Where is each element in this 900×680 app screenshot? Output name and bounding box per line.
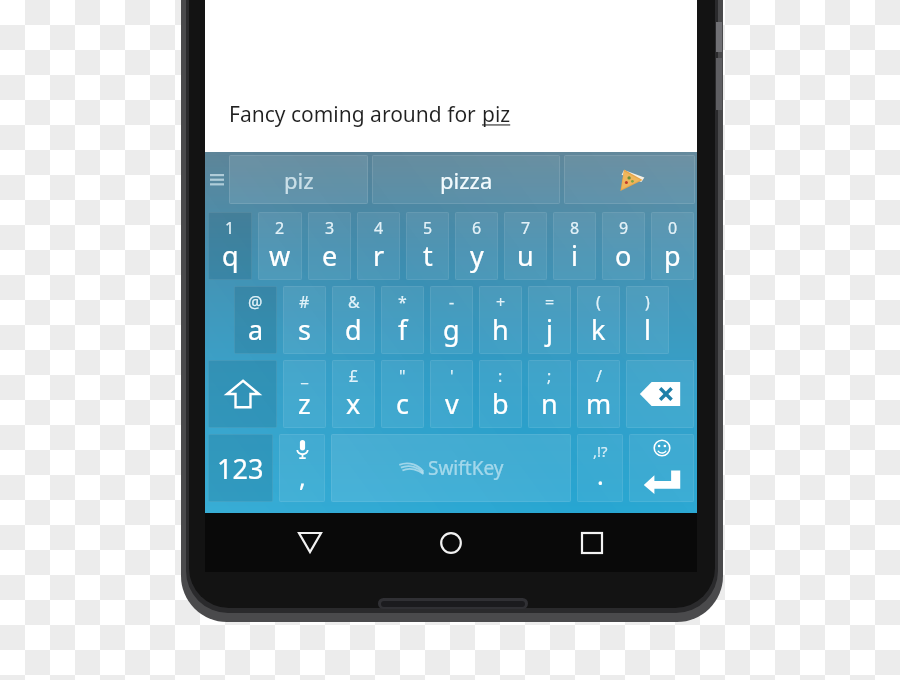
staticText: m (586, 385, 612, 422)
button[interactable]: 6 (455, 212, 498, 280)
staticText: 4 (374, 217, 384, 239)
button[interactable]: 2 (258, 212, 302, 280)
button[interactable]: Backspace (626, 360, 694, 428)
button[interactable]: 8 (553, 212, 596, 280)
button[interactable]: pizza (372, 155, 560, 204)
staticText: Fancy coming around for (229, 100, 482, 129)
staticText: piz (284, 165, 314, 195)
button[interactable]: Shift (208, 360, 277, 428)
button[interactable]: _ (283, 360, 326, 428)
staticText: ) (645, 291, 650, 313)
button[interactable]: & (332, 286, 375, 354)
button[interactable]: Menu (207, 155, 227, 204)
staticText: + (496, 291, 506, 313)
staticText: a (248, 311, 264, 348)
button[interactable]: 1 (208, 212, 252, 280)
staticText: u (517, 237, 534, 274)
button[interactable]: " (381, 360, 424, 428)
staticText: = (545, 291, 555, 313)
staticText: i (571, 237, 578, 274)
staticText: f (398, 311, 408, 348)
staticText: 123 (217, 450, 264, 487)
staticText: " (399, 365, 406, 387)
button[interactable]: = (528, 286, 571, 354)
button[interactable]: 9 (602, 212, 645, 280)
button[interactable]: * (381, 286, 424, 354)
button[interactable]: / (577, 360, 620, 428)
button[interactable]: - (430, 286, 473, 354)
staticText: p (664, 237, 681, 274)
button[interactable]: 0 (651, 212, 694, 280)
button[interactable]: Back (274, 513, 346, 572)
button[interactable]: ,!? (577, 434, 623, 502)
button[interactable]: , (279, 434, 325, 502)
staticText: z (298, 385, 311, 422)
button[interactable]: ) (626, 286, 669, 354)
button[interactable]: 3 (308, 212, 351, 280)
staticText: g (443, 311, 460, 348)
button[interactable]: 5 (406, 212, 449, 280)
staticText: s (298, 311, 311, 348)
staticText: e (322, 237, 338, 274)
staticText: y (470, 237, 484, 274)
staticText: £ (349, 365, 359, 387)
staticText: 3 (325, 217, 335, 239)
staticText: : (498, 365, 503, 387)
staticText: ' (450, 365, 454, 387)
staticText: # (299, 291, 310, 313)
staticText: o (615, 237, 632, 274)
button[interactable]: # (283, 286, 326, 354)
button[interactable]: : (479, 360, 522, 428)
staticText: h (492, 311, 509, 348)
button[interactable]: @ (234, 286, 277, 354)
staticText: . (597, 458, 604, 492)
button[interactable]: Recent apps (556, 513, 628, 572)
staticText: q (222, 237, 239, 274)
button[interactable]: Pizza emoji suggestion (564, 155, 695, 204)
button[interactable]: Numbers (208, 434, 273, 502)
staticText: _ (301, 365, 309, 387)
staticText: 6 (472, 217, 482, 239)
button[interactable]: ( (577, 286, 620, 354)
staticText: 1 (225, 217, 235, 239)
staticText: b (492, 385, 509, 422)
button[interactable]: 7 (504, 212, 547, 280)
staticText: SwiftKey (428, 455, 504, 481)
staticText: 9 (619, 217, 629, 239)
staticText: ( (596, 291, 601, 313)
button[interactable]: 4 (357, 212, 400, 280)
staticText: 0 (668, 217, 678, 239)
button[interactable]: Enter (629, 434, 694, 502)
button[interactable]: ; (528, 360, 571, 428)
button[interactable]: ' (430, 360, 473, 428)
staticText: * (398, 291, 407, 313)
staticText: - (449, 291, 455, 313)
staticText: ,!? (593, 441, 608, 461)
staticText: 8 (570, 217, 580, 239)
staticText: @ (248, 291, 263, 313)
staticText: r (373, 237, 385, 274)
staticText: x (346, 385, 361, 422)
staticText: , (299, 460, 306, 494)
staticText: piz (482, 100, 511, 129)
staticText: n (541, 385, 558, 422)
staticText: c (396, 385, 409, 422)
button[interactable]: £ (332, 360, 375, 428)
staticText: k (591, 311, 606, 348)
button[interactable]: Home (415, 513, 487, 572)
staticText: d (345, 311, 362, 348)
staticText: 2 (275, 217, 285, 239)
button[interactable]: piz (229, 155, 368, 204)
staticText: w (269, 237, 291, 274)
staticText: j (546, 311, 553, 348)
button[interactable]: SwiftKey (331, 434, 571, 502)
staticText: v (445, 385, 459, 422)
staticText: t (423, 237, 433, 274)
staticText: 5 (423, 217, 433, 239)
staticText: / (596, 365, 602, 387)
button[interactable]: + (479, 286, 522, 354)
staticText: & (348, 291, 360, 313)
staticText: l (644, 311, 651, 348)
